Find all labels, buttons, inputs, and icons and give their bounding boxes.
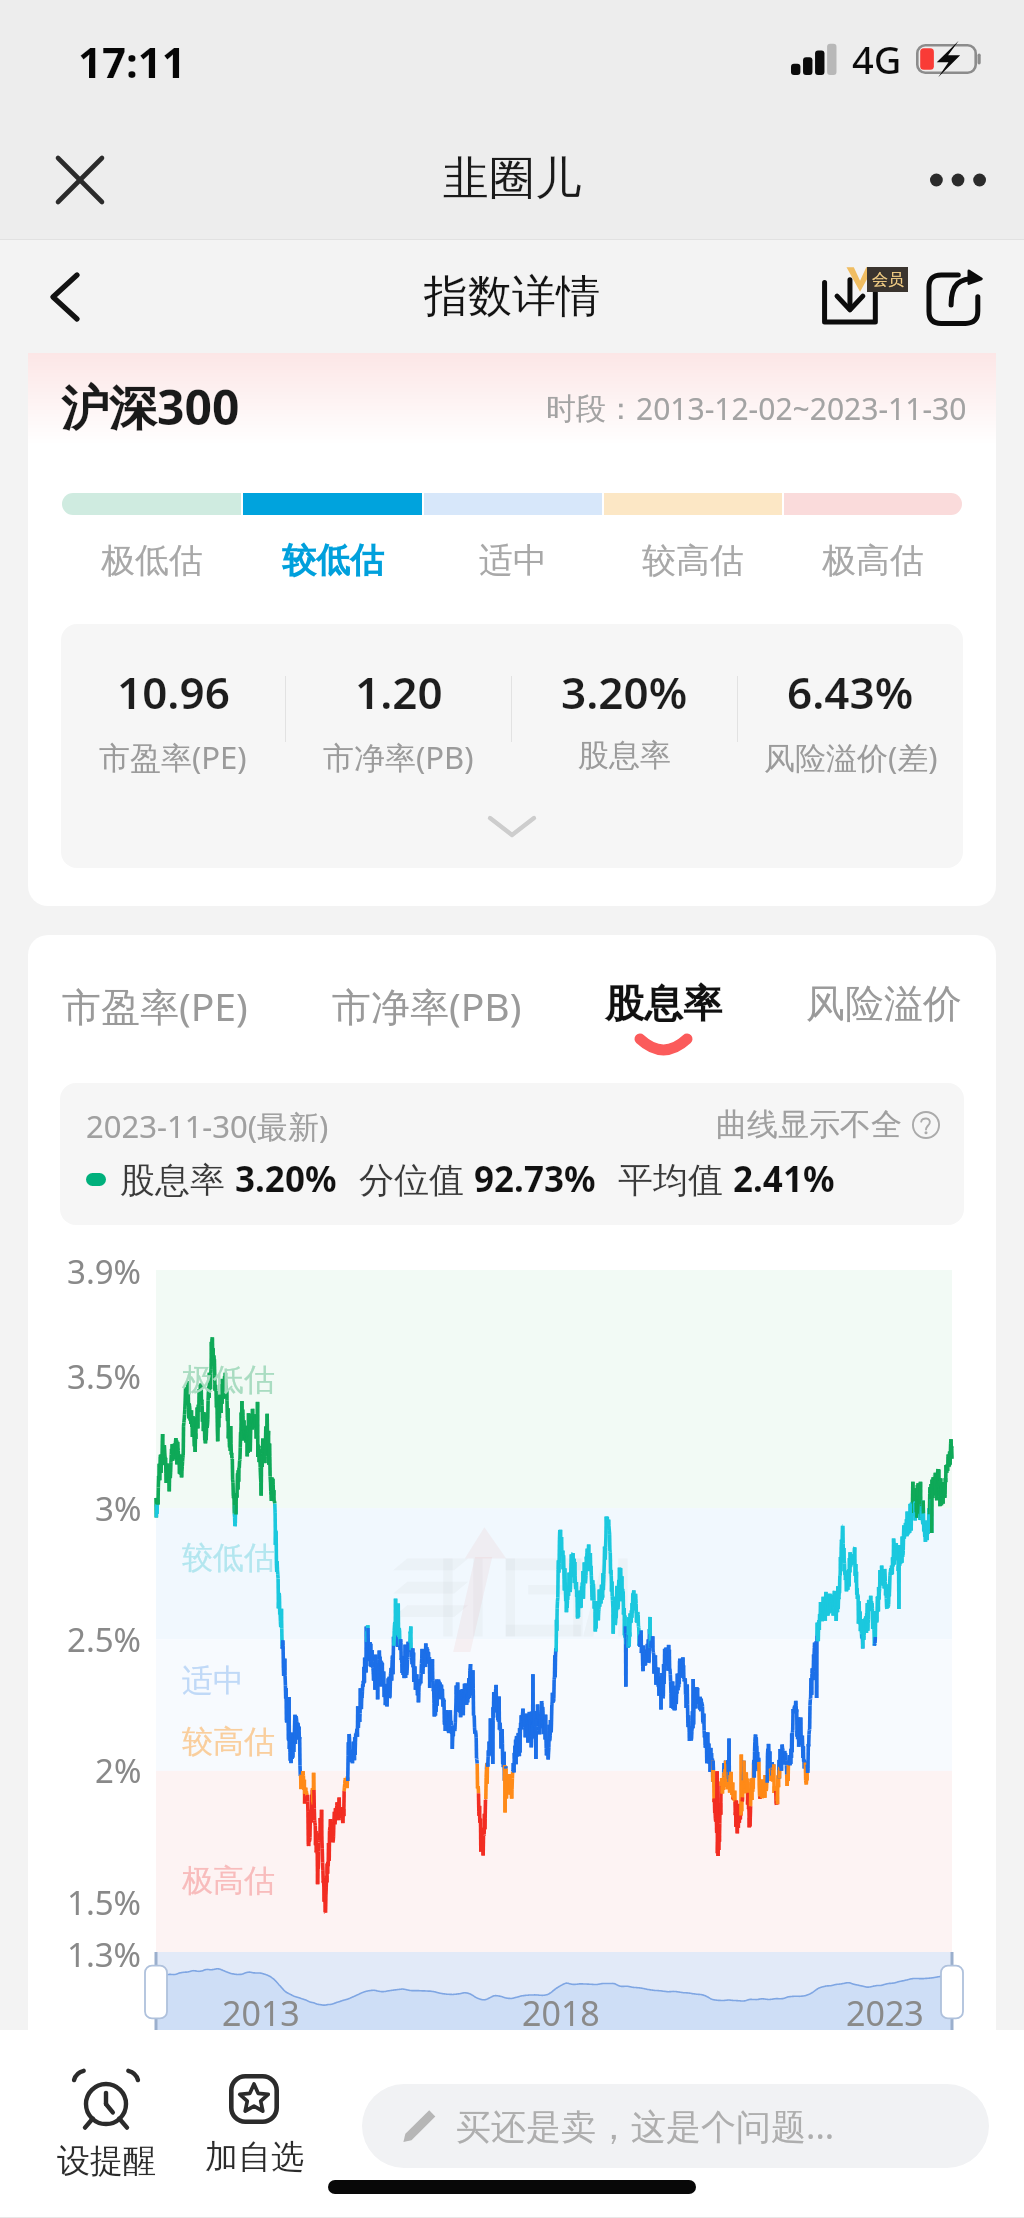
staticText: 2018 xyxy=(522,1990,600,2030)
staticText: 2023-11-30(最新) xyxy=(86,1105,329,1147)
staticText: 适中 xyxy=(479,539,547,582)
button[interactable]: 市盈率(PE) xyxy=(60,979,250,1063)
staticText: 4G xyxy=(852,33,902,85)
staticText: 1.3% xyxy=(67,1932,142,1977)
staticText: 2% xyxy=(95,1748,142,1793)
staticText: 韭圈儿 xyxy=(443,150,581,208)
staticText: 92.73% xyxy=(474,1155,596,1203)
staticText: 3% xyxy=(95,1486,142,1531)
button[interactable]: 设提醒 xyxy=(0,2062,212,2190)
staticText: 较低估 xyxy=(282,539,384,582)
button[interactable]: More options xyxy=(920,142,996,218)
button[interactable]: Close xyxy=(42,142,118,218)
staticText: 沪深300 xyxy=(61,374,240,440)
staticText: 3.20% xyxy=(235,1155,337,1203)
staticText: 曲线显示不全 xyxy=(716,1105,902,1144)
button[interactable]: Download xyxy=(822,254,908,340)
staticText: 市盈率(PE) xyxy=(99,736,247,774)
staticText: 平均值 xyxy=(618,1155,733,1203)
staticText: 2013 xyxy=(222,1990,300,2030)
staticText: 较高估 xyxy=(182,1722,275,1761)
staticText: 2.5% xyxy=(67,1617,142,1662)
button[interactable]: 买还是卖，这是个问题... xyxy=(362,2084,989,2168)
staticText: 极高估 xyxy=(182,1861,275,1900)
staticText: 设提醒 xyxy=(57,2140,156,2182)
staticText: 股息率 xyxy=(578,736,671,774)
staticText: 2023 xyxy=(846,1990,924,2030)
staticText: 市净率(PB) xyxy=(332,979,522,1032)
staticText: 极低估 xyxy=(182,1360,275,1399)
staticText: 3.9% xyxy=(67,1249,142,1294)
staticText: 2.41% xyxy=(733,1155,835,1203)
staticText: 加自选 xyxy=(205,2136,304,2178)
button[interactable]: Back xyxy=(26,259,102,335)
button[interactable]: Share xyxy=(914,253,1002,341)
staticText: 股息率 xyxy=(605,979,722,1028)
staticText: 极低估 xyxy=(101,539,203,582)
staticText: 股息率 xyxy=(120,1155,235,1203)
staticText: 风险溢价(差) xyxy=(764,736,938,774)
staticText: 分位值 xyxy=(359,1155,474,1203)
staticText: 17:11 xyxy=(78,33,186,90)
staticText: 风险溢价 xyxy=(806,979,962,1028)
button[interactable]: Help: curve not fully shown xyxy=(912,1111,940,1139)
staticText: 2013-12-02~2023-11-30 xyxy=(636,388,967,429)
staticText: 6.43% xyxy=(787,662,914,722)
staticText: 极高估 xyxy=(822,539,924,582)
staticText: 时段： xyxy=(546,390,636,428)
button[interactable]: 股息率 xyxy=(603,979,724,1059)
button[interactable]: 风险溢价 xyxy=(804,979,964,1059)
button[interactable]: 市净率(PB) xyxy=(330,979,524,1063)
staticText: 1.20 xyxy=(355,662,443,722)
staticText: 1.5% xyxy=(67,1880,142,1925)
staticText: 3.5% xyxy=(67,1354,142,1399)
staticText: 会员 xyxy=(872,270,904,290)
staticText: 适中 xyxy=(182,1661,244,1700)
button[interactable]: 加自选 xyxy=(179,2062,329,2190)
staticText: 买还是卖，这是个问题... xyxy=(456,2102,835,2150)
staticText: 3.20% xyxy=(561,662,688,722)
staticText: 较高估 xyxy=(642,539,744,582)
staticText: 市盈率(PE) xyxy=(62,979,248,1032)
staticText: 10.96 xyxy=(117,662,230,722)
staticText: 市净率(PB) xyxy=(323,736,474,774)
staticText: 指数详情 xyxy=(424,269,600,324)
staticText: 较低估 xyxy=(182,1538,275,1577)
